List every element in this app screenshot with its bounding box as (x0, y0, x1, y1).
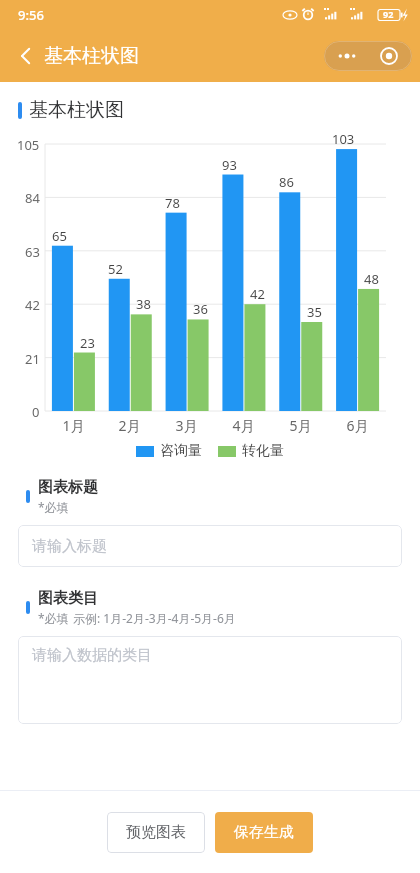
staticText: 图表类目 (38, 589, 98, 608)
staticText: 38 (136, 295, 151, 313)
button[interactable]: 胶囊菜单 (369, 41, 409, 71)
staticText: 9:56 (18, 6, 44, 24)
staticText: 52 (108, 260, 123, 278)
staticText: 105 (17, 136, 40, 154)
staticText: 48 (364, 270, 379, 288)
staticText: 转化量 (242, 442, 284, 460)
staticText: *必填 (38, 610, 69, 626)
staticText: 3月 (175, 416, 198, 435)
staticText: 基本柱状图 (44, 44, 139, 68)
button[interactable]: 返回 (8, 38, 44, 74)
staticText: 36 (193, 300, 208, 318)
button[interactable]: 请输入标题 (18, 525, 402, 567)
staticText: 请输入数据的类目 (32, 646, 152, 665)
staticText: 示例: 1月-2月-3月-4月-5月-6月 (73, 610, 236, 626)
staticText: 42 (250, 285, 265, 303)
button[interactable]: 预览图表 (107, 812, 205, 853)
staticText: 65 (52, 227, 67, 245)
staticText: 93 (222, 156, 237, 174)
button[interactable]: 请输入数据的类目 (18, 636, 402, 724)
staticText: 2月 (118, 416, 141, 435)
staticText: *必填 (38, 499, 69, 515)
staticText: 78 (165, 194, 180, 212)
staticText: 图表标题 (38, 478, 98, 497)
staticText: 23 (80, 334, 95, 352)
staticText: 4月 (232, 416, 255, 435)
staticText: 6月 (346, 416, 369, 435)
staticText: 21 (25, 350, 40, 368)
staticText: 0 (32, 403, 40, 421)
staticText: 保存生成 (234, 823, 294, 842)
staticText: 86 (279, 173, 294, 191)
staticText: 预览图表 (126, 823, 186, 842)
staticText: 5月 (289, 416, 312, 435)
staticText: 咨询量 (160, 442, 202, 460)
staticText: 基本柱状图 (29, 98, 124, 122)
staticText: 63 (25, 243, 40, 261)
staticText: 请输入标题 (32, 537, 107, 556)
staticText: 103 (332, 130, 355, 148)
button[interactable]: 更多 (327, 41, 367, 71)
staticText: 92 (383, 8, 394, 20)
staticText: 42 (25, 296, 40, 314)
staticText: 1月 (62, 416, 85, 435)
staticText: 35 (307, 303, 322, 321)
staticText: 84 (25, 189, 40, 207)
button[interactable]: 保存生成 (215, 812, 313, 853)
